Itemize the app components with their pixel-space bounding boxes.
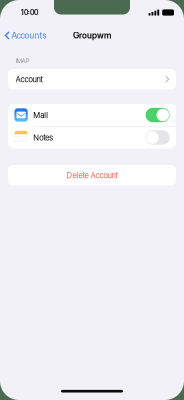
staticText: IMAP: [15, 57, 29, 65]
staticText: Groupwm: [73, 30, 111, 41]
button[interactable]: Mail: [8, 104, 176, 126]
staticText: Mail: [33, 110, 48, 120]
staticText: Delete Account: [66, 170, 117, 180]
button[interactable]: Accounts: [0, 26, 50, 45]
button[interactable]: Notes: [8, 126, 176, 148]
button[interactable]: Delete Account: [8, 165, 176, 185]
staticText: Account: [15, 74, 42, 84]
staticText: Accounts: [11, 30, 46, 41]
staticText: Notes: [33, 133, 53, 142]
staticText: 10:00: [21, 8, 38, 17]
button[interactable]: Account: [8, 69, 176, 89]
